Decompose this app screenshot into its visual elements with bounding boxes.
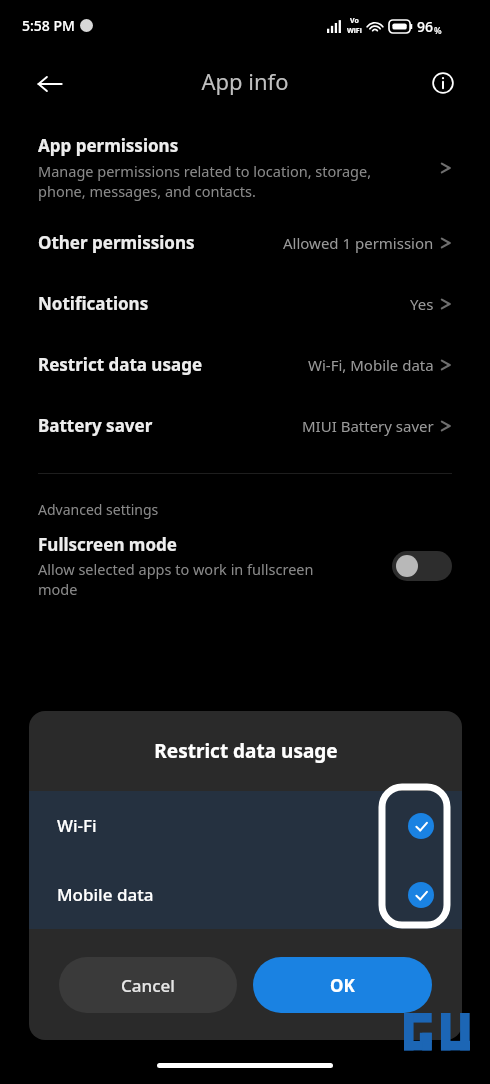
staticText: Wi-Fi <box>57 814 97 837</box>
staticText: Allowed 1 permission <box>283 233 434 253</box>
button[interactable]: Notifications <box>0 288 490 319</box>
button[interactable]: Back <box>24 58 76 110</box>
button[interactable]: Other permissions <box>0 227 490 258</box>
button[interactable]: Fullscreen mode toggle <box>392 551 452 581</box>
button[interactable]: Wi-Fi <box>29 791 462 860</box>
button[interactable]: Restrict data usage <box>0 349 490 380</box>
staticText: Wi-Fi, Mobile data <box>308 355 434 375</box>
button[interactable]: Fullscreen mode <box>0 533 490 599</box>
staticText: Mobile data <box>57 883 154 906</box>
staticText: Battery saver <box>38 414 153 437</box>
button[interactable]: OK <box>253 957 432 1013</box>
staticText: Notifications <box>38 292 149 315</box>
button[interactable]: Battery saver <box>0 410 490 441</box>
button[interactable]: Cancel <box>59 957 237 1013</box>
staticText: % <box>434 24 442 36</box>
staticText: OK <box>330 974 355 997</box>
staticText: Advanced settings <box>38 500 159 519</box>
staticText: 96 <box>417 17 434 36</box>
staticText: Cancel <box>121 974 175 997</box>
staticText: 5:58 PM <box>22 16 75 35</box>
button[interactable]: App permissions <box>0 130 490 205</box>
staticText: App info <box>0 66 490 96</box>
button[interactable]: Mobile data <box>29 860 462 929</box>
button[interactable]: Info <box>418 58 468 108</box>
staticText: Vo <box>350 16 359 26</box>
staticText: Manage permissions related to location, … <box>38 161 372 201</box>
staticText: Yes <box>410 294 434 314</box>
staticText: Fullscreen mode <box>38 533 177 556</box>
staticText: Other permissions <box>38 231 195 254</box>
staticText: WiFi <box>347 26 362 36</box>
staticText: MIUI Battery saver <box>302 416 434 436</box>
staticText: Restrict data usage <box>38 353 203 376</box>
staticText: Restrict data usage <box>154 738 338 764</box>
staticText: Allow selected apps to work in fullscree… <box>38 559 314 599</box>
staticText: App permissions <box>38 134 179 157</box>
